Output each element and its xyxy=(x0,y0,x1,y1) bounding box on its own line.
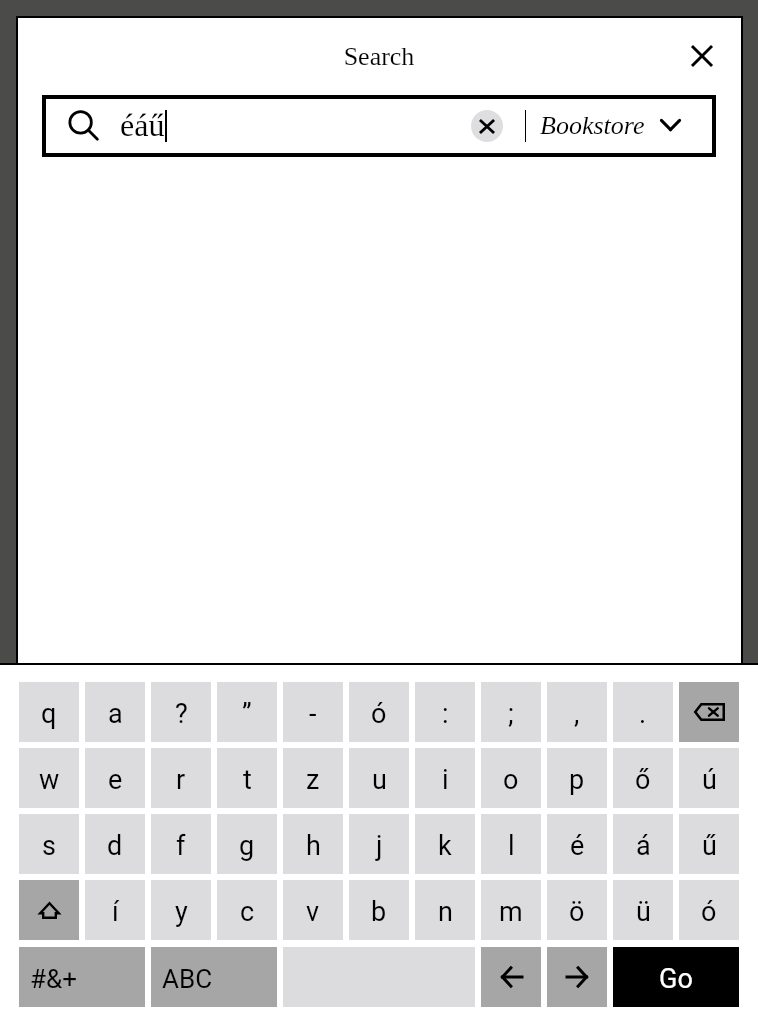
staticText: s xyxy=(42,830,56,862)
button[interactable]: q xyxy=(19,682,79,742)
staticText: : xyxy=(442,698,449,730)
button[interactable]: d xyxy=(85,814,145,874)
staticText: ö xyxy=(569,896,585,928)
button[interactable]: Move cursor left xyxy=(481,947,541,1007)
button[interactable]: ő xyxy=(613,748,673,808)
staticText: d xyxy=(107,830,123,862)
button[interactable]: : xyxy=(415,682,475,742)
staticText: e xyxy=(108,764,123,796)
other: Choose search scope xyxy=(658,112,682,138)
button[interactable]: ABC xyxy=(151,947,277,1007)
staticText: l xyxy=(508,830,515,862)
button[interactable]: n xyxy=(415,880,475,940)
button[interactable]: w xyxy=(19,748,79,808)
staticText: v xyxy=(306,896,320,928)
staticText: a xyxy=(108,698,123,730)
staticText: ü xyxy=(636,896,651,928)
button[interactable]: Bookstore xyxy=(540,100,688,152)
staticText: ; xyxy=(508,698,514,730)
button[interactable]: c xyxy=(217,880,277,940)
staticText: r xyxy=(176,764,186,796)
staticText: ú xyxy=(702,764,717,796)
button[interactable]: t xyxy=(217,748,277,808)
button[interactable]: Search xyxy=(58,100,104,152)
button[interactable]: é xyxy=(547,814,607,874)
button[interactable]: z xyxy=(283,748,343,808)
button[interactable]: Shift xyxy=(19,880,79,940)
staticText: o xyxy=(503,764,519,796)
button[interactable]: f xyxy=(151,814,211,874)
button[interactable]: ű xyxy=(679,814,739,874)
button[interactable]: l xyxy=(481,814,541,874)
button[interactable]: Go xyxy=(613,947,739,1007)
button[interactable]: ú xyxy=(679,748,739,808)
button[interactable]: . xyxy=(613,682,673,742)
button[interactable]: y xyxy=(151,880,211,940)
button[interactable]: ? xyxy=(151,682,211,742)
button[interactable]: e xyxy=(85,748,145,808)
button[interactable]: v xyxy=(283,880,343,940)
staticText: p xyxy=(569,764,585,796)
button[interactable]: Backspace xyxy=(679,682,739,742)
staticText: w xyxy=(39,764,60,796)
staticText: ” xyxy=(242,698,252,730)
button[interactable]: o xyxy=(481,748,541,808)
button[interactable]: ; xyxy=(481,682,541,742)
staticText: ű xyxy=(702,830,717,862)
button[interactable]: , xyxy=(547,682,607,742)
button[interactable]: Close xyxy=(669,23,735,89)
staticText: ó xyxy=(701,896,717,928)
button[interactable]: Move cursor right xyxy=(547,947,607,1007)
staticText: i xyxy=(442,764,449,796)
staticText: é xyxy=(570,830,585,862)
button[interactable]: u xyxy=(349,748,409,808)
staticText: f xyxy=(176,830,186,862)
button[interactable]: Clear text xyxy=(471,110,503,142)
staticText: q xyxy=(41,698,57,730)
button[interactable]: á xyxy=(613,814,673,874)
button[interactable]: p xyxy=(547,748,607,808)
staticText: á xyxy=(636,830,651,862)
button[interactable]: i xyxy=(415,748,475,808)
staticText: - xyxy=(309,698,317,730)
staticText: z xyxy=(306,764,320,796)
staticText: h xyxy=(306,830,321,862)
staticText: ABC xyxy=(162,964,213,994)
button[interactable]: g xyxy=(217,814,277,874)
button[interactable]: m xyxy=(481,880,541,940)
button[interactable]: ü xyxy=(613,880,673,940)
button[interactable]: b xyxy=(349,880,409,940)
button[interactable]: í xyxy=(85,880,145,940)
button[interactable]: r xyxy=(151,748,211,808)
staticText: j xyxy=(376,830,383,862)
staticText: c xyxy=(240,896,255,928)
staticText: Search xyxy=(16,42,742,76)
button[interactable]: ó xyxy=(679,880,739,940)
staticText: u xyxy=(372,764,387,796)
staticText: n xyxy=(438,896,453,928)
button[interactable]: ö xyxy=(547,880,607,940)
staticText: #&+ xyxy=(30,964,77,994)
staticText: ó xyxy=(371,698,387,730)
staticText: g xyxy=(239,830,255,862)
button[interactable]: s xyxy=(19,814,79,874)
button[interactable]: h xyxy=(283,814,343,874)
staticText: , xyxy=(574,698,580,730)
staticText: ? xyxy=(175,698,188,730)
button[interactable]: #&+ xyxy=(19,947,145,1007)
staticText: m xyxy=(499,896,523,928)
staticText: éáű xyxy=(120,107,165,142)
button[interactable]: ” xyxy=(217,682,277,742)
staticText: í xyxy=(112,896,119,928)
button[interactable]: ó xyxy=(349,682,409,742)
button[interactable]: j xyxy=(349,814,409,874)
staticText: k xyxy=(438,830,452,862)
button[interactable]: a xyxy=(85,682,145,742)
staticText: Go xyxy=(659,963,693,995)
staticText: b xyxy=(371,896,387,928)
button[interactable]: k xyxy=(415,814,475,874)
button[interactable]: - xyxy=(283,682,343,742)
staticText: ő xyxy=(635,764,651,796)
staticText: t xyxy=(243,764,252,796)
